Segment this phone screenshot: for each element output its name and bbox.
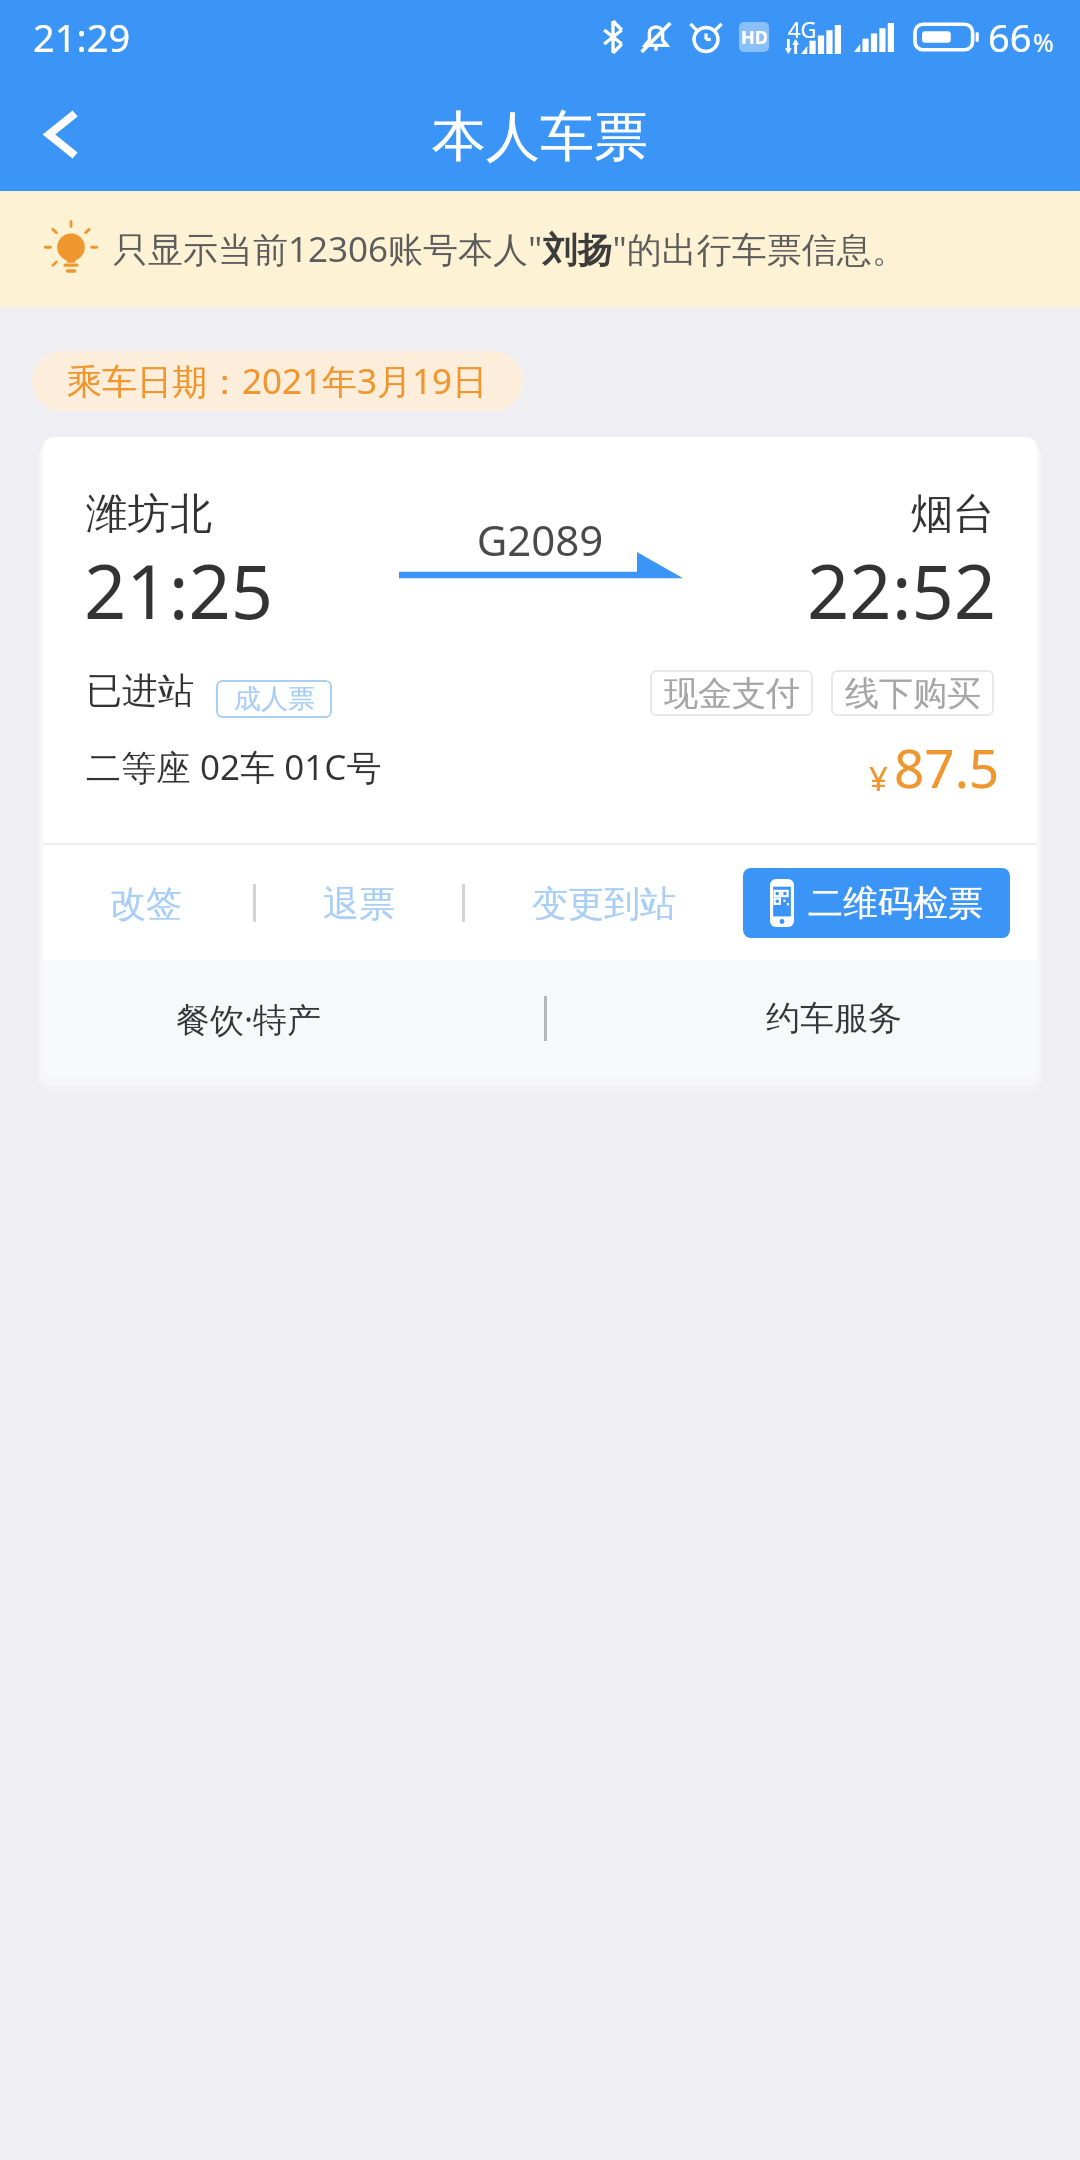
staticText: 21:29	[33, 11, 131, 63]
staticText: 线下购买	[845, 672, 981, 715]
staticText: 变更到站	[532, 881, 676, 926]
staticText: 烟台	[911, 488, 995, 541]
button[interactable]: 二维码检票	[743, 868, 1010, 938]
staticText: 4G	[788, 14, 817, 44]
staticText: 改签	[110, 881, 182, 926]
staticText: 约车服务	[766, 997, 902, 1040]
staticText: 本人车票	[432, 103, 648, 171]
staticText: ¥	[869, 756, 888, 801]
staticText: 只显示当前12306账号本人"刘扬"的出行车票信息。	[113, 225, 907, 273]
staticText: 二维码检票	[808, 881, 983, 925]
button[interactable]: Back	[0, 68, 121, 188]
staticText: 21:25	[84, 540, 274, 641]
staticText: 退票	[323, 881, 395, 926]
staticText: 成人票	[234, 682, 315, 716]
staticText: 现金支付	[664, 672, 800, 715]
button[interactable]	[43, 437, 1037, 843]
staticText: 二等座 02车 01C号	[86, 743, 382, 791]
staticText: 87.5	[894, 731, 1000, 803]
staticText: 22:52	[807, 540, 997, 641]
button[interactable]: 变更到站	[526, 846, 682, 960]
staticText: 餐饮·特产	[176, 996, 322, 1042]
button[interactable]: 餐饮·特产	[43, 960, 455, 1077]
button[interactable]: 乘车日期：2021年3月19日	[32, 351, 523, 411]
button[interactable]: 改签	[89, 846, 203, 960]
staticText: 66	[988, 11, 1032, 63]
button[interactable]: 退票	[302, 846, 416, 960]
staticText: 潍坊北	[86, 488, 212, 541]
button[interactable]: 约车服务	[628, 960, 1037, 1077]
staticText: 乘车日期：2021年3月19日	[67, 357, 488, 405]
staticText: 已进站	[86, 668, 194, 713]
staticText: %	[1033, 25, 1054, 59]
staticText: HD	[741, 25, 768, 50]
staticText: G2089	[440, 511, 640, 568]
